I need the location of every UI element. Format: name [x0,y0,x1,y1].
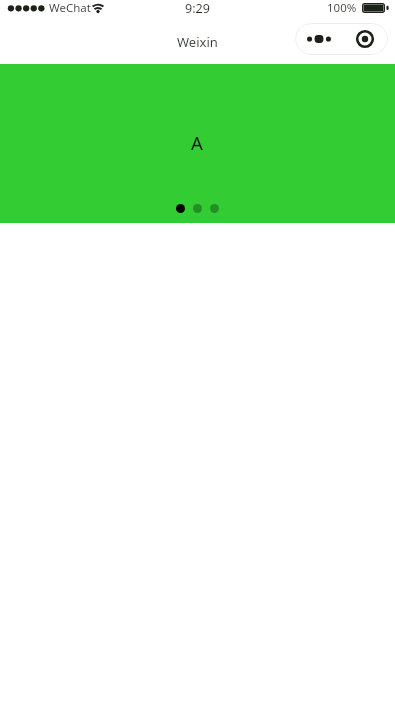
staticText: A [191,130,203,155]
staticText: 9:29 [185,0,210,17]
button[interactable]: Slide 1 [176,204,185,213]
staticText: WeChat [49,0,91,16]
button[interactable]: A [0,64,395,223]
staticText: Weixin [177,33,218,51]
button[interactable]: Slide 2 [193,204,202,213]
button[interactable]: More options [295,23,342,55]
button[interactable]: Slide 3 [210,204,219,213]
button[interactable]: Close mini program [342,23,388,55]
staticText: 100% [327,0,357,16]
